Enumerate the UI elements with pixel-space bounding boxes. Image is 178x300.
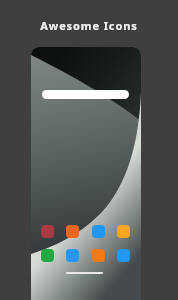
button[interactable]: App icon [66,225,79,238]
button[interactable]: App icon [41,249,54,262]
button[interactable]: App icon [41,225,54,238]
button[interactable]: App icon [92,225,105,238]
button[interactable]: App icon [92,249,105,262]
button[interactable]: App icon [117,225,130,238]
button[interactable]: App icon [66,249,79,262]
button[interactable]: App icon [117,249,130,262]
staticText: Awesome Icons [0,18,178,33]
button[interactable]: Search [31,47,141,300]
button[interactable]: Search [42,90,129,99]
